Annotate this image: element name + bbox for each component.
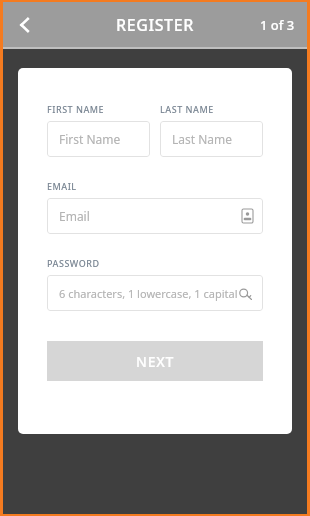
staticText: PASSWORD: [47, 257, 100, 269]
staticText: 6 characters, 1 lowercase, 1 capital: [59, 286, 238, 301]
staticText: REGISTER: [116, 14, 194, 36]
staticText: NEXT: [136, 352, 175, 371]
staticText: LAST NAME: [160, 103, 214, 115]
staticText: EMAIL: [47, 180, 77, 192]
button[interactable]: Back: [3, 2, 47, 47]
button[interactable]: Email: [47, 198, 263, 234]
staticText: First Name: [59, 131, 121, 147]
staticText: 1 of 3: [260, 16, 295, 34]
button[interactable]: NEXT: [47, 341, 263, 381]
staticText: Email: [59, 208, 90, 224]
staticText: FIRST NAME: [47, 103, 105, 115]
staticText: Last Name: [172, 131, 233, 147]
button[interactable]: First Name: [47, 121, 150, 157]
button[interactable]: Last Name: [160, 121, 263, 157]
button[interactable]: 6 characters, 1 lowercase, 1 capital: [47, 275, 263, 311]
